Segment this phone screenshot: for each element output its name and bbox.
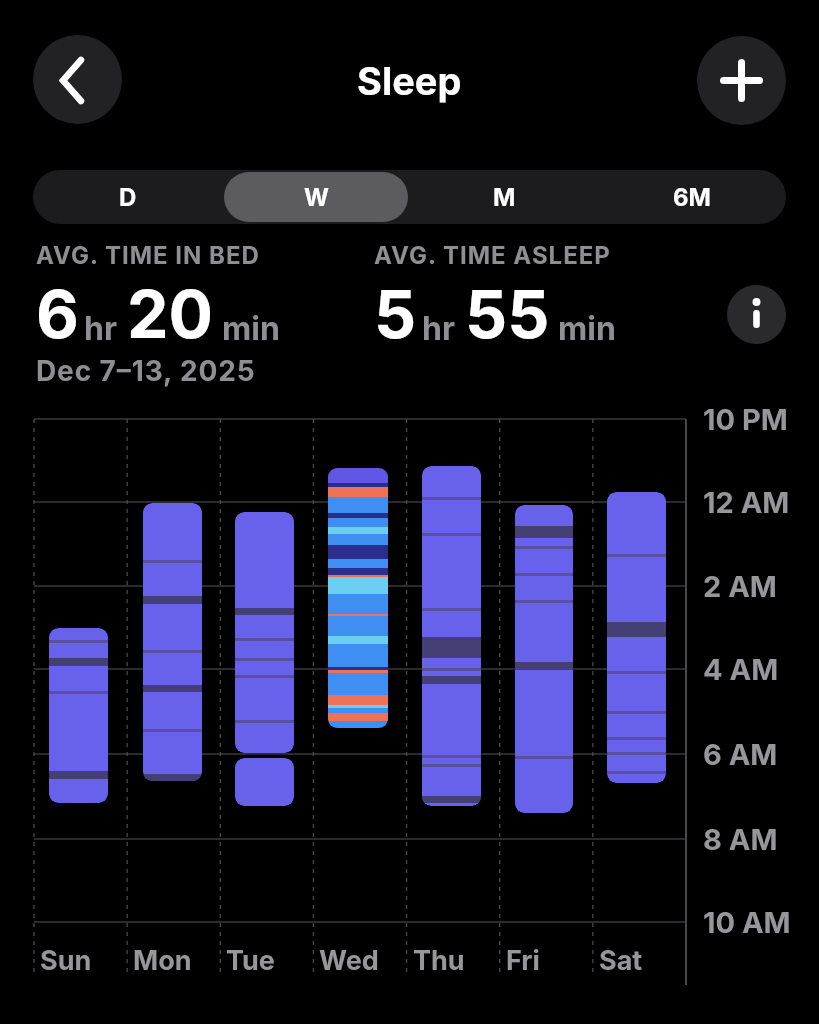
- staticText: 6: [36, 274, 79, 354]
- staticText: Sun: [40, 944, 92, 977]
- button[interactable]: W: [222, 170, 410, 224]
- button[interactable]: [727, 285, 786, 344]
- staticText: Dec 7–13, 2025: [36, 354, 256, 388]
- staticText: Tue: [226, 944, 275, 977]
- staticText: Wed: [319, 944, 379, 977]
- staticText: hr: [84, 309, 117, 348]
- button[interactable]: [697, 36, 786, 125]
- button[interactable]: [33, 35, 122, 124]
- button[interactable]: M: [410, 170, 598, 224]
- staticText: M: [493, 183, 516, 212]
- staticText: Sat: [599, 944, 643, 977]
- staticText: 8 AM: [703, 822, 778, 857]
- staticText: 4 AM: [703, 652, 779, 687]
- staticText: 10 AM: [703, 905, 791, 940]
- staticText: Fri: [506, 944, 540, 977]
- staticText: 6 AM: [703, 737, 778, 772]
- staticText: 2 AM: [703, 569, 777, 604]
- staticText: 10 PM: [703, 402, 788, 437]
- staticText: Sleep: [357, 58, 462, 104]
- button[interactable]: 6M: [598, 170, 786, 224]
- staticText: 12 AM: [703, 485, 790, 520]
- staticText: min: [558, 309, 616, 348]
- button[interactable]: D: [33, 170, 222, 224]
- staticText: hr: [422, 309, 455, 348]
- staticText: 55: [465, 274, 550, 354]
- staticText: AVG. TIME ASLEEP: [374, 241, 611, 270]
- staticText: Mon: [133, 944, 192, 977]
- staticText: AVG. TIME IN BED: [36, 241, 260, 270]
- staticText: D: [119, 183, 137, 212]
- staticText: Thu: [413, 944, 465, 977]
- staticText: 6M: [673, 183, 711, 212]
- staticText: 20: [127, 274, 214, 354]
- staticText: W: [304, 183, 329, 212]
- staticText: 5: [374, 274, 417, 354]
- staticText: min: [222, 309, 280, 348]
